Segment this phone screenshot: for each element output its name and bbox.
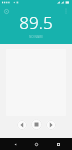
staticText: NO NAME <box>29 35 43 39</box>
staticText: 89.5 <box>19 11 53 34</box>
button[interactable]: Navigation menu <box>2 7 10 15</box>
button[interactable]: Stop <box>31 119 42 130</box>
button[interactable]: More options <box>62 7 70 15</box>
button[interactable]: Home <box>29 138 43 150</box>
button[interactable]: Recent apps <box>51 138 65 150</box>
button[interactable]: Next station <box>46 120 56 130</box>
button[interactable]: Back <box>8 138 22 150</box>
button[interactable]: Previous station <box>17 120 27 130</box>
